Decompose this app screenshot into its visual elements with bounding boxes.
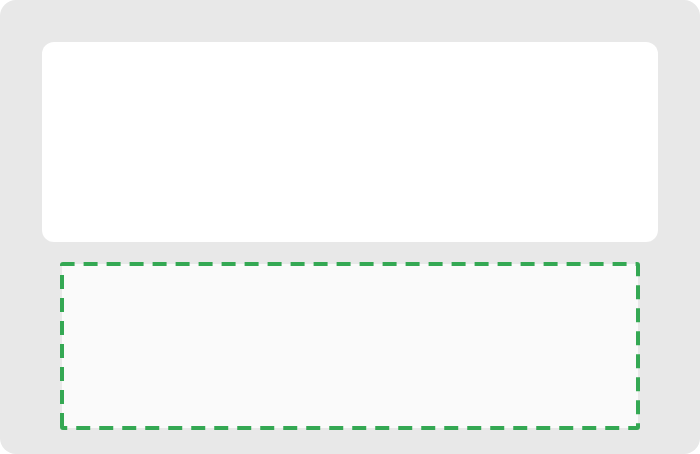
button[interactable]: Drop zone placeholder: [60, 262, 640, 430]
